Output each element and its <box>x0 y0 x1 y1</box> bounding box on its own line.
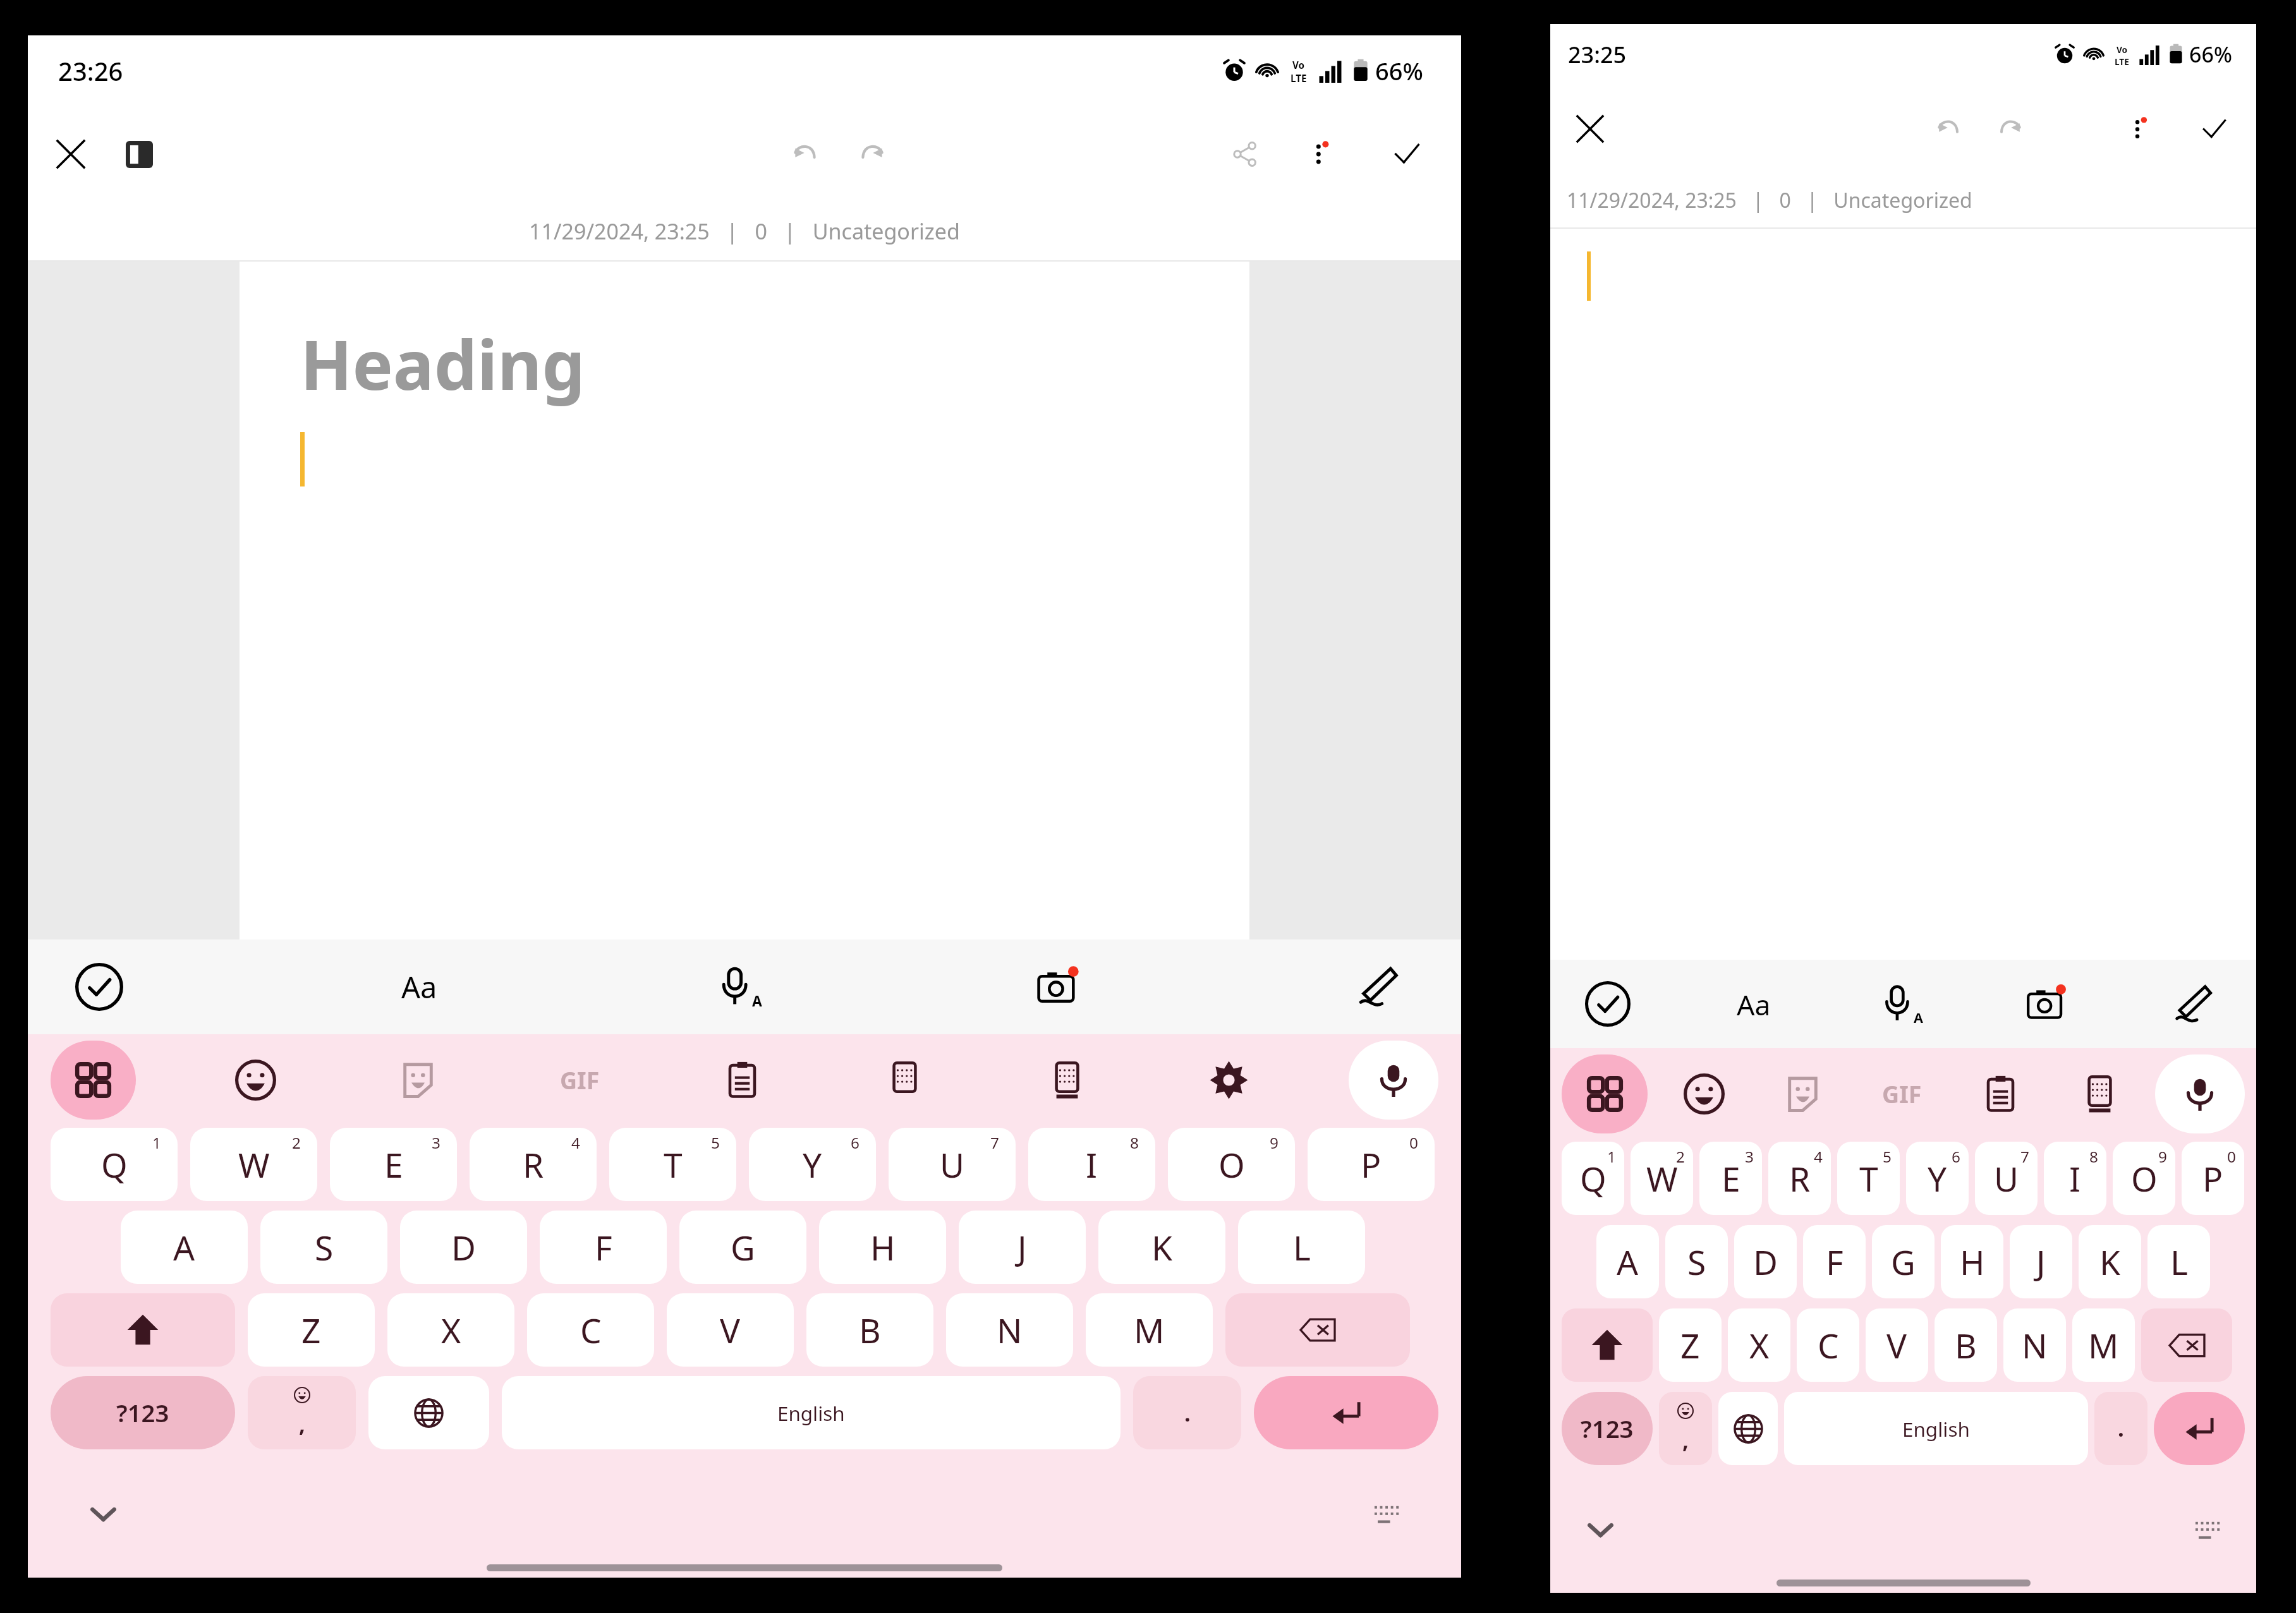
button[interactable]: Voice input <box>705 953 772 1020</box>
button[interactable]: T <box>609 1128 736 1201</box>
button[interactable]: Hide keyboard <box>79 1489 128 1538</box>
button[interactable]: Close <box>1563 102 1617 156</box>
button[interactable]: H <box>819 1211 946 1284</box>
button[interactable]: Voice input <box>1868 972 1933 1036</box>
button[interactable]: Emoji <box>213 1041 298 1120</box>
button[interactable]: Q <box>51 1128 178 1201</box>
button[interactable]: G <box>679 1211 806 1284</box>
button[interactable]: W <box>1631 1142 1693 1215</box>
button[interactable]: More options <box>1292 125 1350 183</box>
button[interactable]: Change language <box>1718 1392 1778 1465</box>
button[interactable]: Period <box>2094 1392 2147 1465</box>
button[interactable]: Z <box>248 1293 375 1367</box>
button[interactable]: Undo <box>1922 102 1977 156</box>
button[interactable]: Voice typing <box>2155 1054 2245 1133</box>
button[interactable]: Camera <box>1024 953 1091 1020</box>
button[interactable]: Clipboard <box>700 1041 785 1120</box>
button[interactable]: Stickers <box>375 1041 461 1120</box>
button[interactable]: Text format <box>386 953 453 1020</box>
button[interactable]: Z <box>1659 1308 1722 1382</box>
button[interactable]: A <box>1596 1225 1659 1298</box>
button[interactable]: D <box>400 1211 527 1284</box>
button[interactable]: Voice typing <box>1349 1041 1438 1120</box>
button[interactable]: Share <box>1216 125 1274 183</box>
button[interactable]: C <box>527 1293 654 1367</box>
button[interactable]: F <box>540 1211 667 1284</box>
button[interactable]: Y <box>749 1128 876 1201</box>
button[interactable]: H <box>1941 1225 2003 1298</box>
button[interactable]: Keyboard modes <box>51 1041 136 1120</box>
button[interactable]: T <box>1837 1142 1900 1215</box>
button[interactable]: V <box>1866 1308 1928 1382</box>
button[interactable]: Undo <box>777 125 835 183</box>
button[interactable]: Emoji and comma <box>1659 1392 1712 1465</box>
button[interactable]: One-handed <box>862 1041 947 1120</box>
button[interactable]: Keyboard layout <box>1024 1041 1110 1120</box>
button[interactable]: M <box>2072 1308 2135 1382</box>
button[interactable]: Redo <box>842 125 900 183</box>
button[interactable]: R <box>1768 1142 1831 1215</box>
button[interactable]: Symbols <box>51 1376 235 1449</box>
button[interactable]: P <box>2182 1142 2244 1215</box>
button[interactable]: Period <box>1133 1376 1241 1449</box>
button[interactable]: Redo <box>1982 102 2036 156</box>
button[interactable]: Shift <box>51 1293 235 1367</box>
button[interactable]: N <box>2003 1308 2066 1382</box>
button[interactable]: S <box>1665 1225 1728 1298</box>
button[interactable]: Shift <box>1562 1308 1653 1382</box>
button[interactable]: Hide keyboard <box>1576 1504 1625 1554</box>
button[interactable]: B <box>806 1293 933 1367</box>
button[interactable]: K <box>1098 1211 1225 1284</box>
button[interactable]: Change language <box>368 1376 489 1449</box>
button[interactable]: J <box>2010 1225 2072 1298</box>
button[interactable]: O <box>2113 1142 2175 1215</box>
button[interactable]: R <box>470 1128 597 1201</box>
button[interactable]: More options <box>2112 102 2166 156</box>
button[interactable]: Close <box>42 125 100 183</box>
button[interactable]: Keyboard modes <box>1562 1054 1648 1133</box>
button[interactable]: Resize keyboard <box>2182 1504 2231 1554</box>
button[interactable]: Resize keyboard <box>1361 1489 1410 1538</box>
button[interactable]: Backspace <box>2141 1308 2232 1382</box>
button[interactable]: Enter <box>2154 1392 2245 1465</box>
button[interactable]: D <box>1734 1225 1797 1298</box>
button[interactable]: S <box>260 1211 387 1284</box>
button[interactable]: Backspace <box>1225 1293 1410 1367</box>
button[interactable]: Draw <box>2160 972 2225 1036</box>
button[interactable]: V <box>667 1293 794 1367</box>
button[interactable]: E <box>330 1128 457 1201</box>
button[interactable]: Draw <box>1344 953 1411 1020</box>
button[interactable]: G <box>1872 1225 1935 1298</box>
button[interactable]: Done <box>2187 102 2241 156</box>
button[interactable]: X <box>387 1293 514 1367</box>
button[interactable]: A <box>121 1211 248 1284</box>
button[interactable]: Settings <box>1186 1041 1272 1120</box>
button[interactable]: N <box>946 1293 1073 1367</box>
button[interactable]: I <box>1028 1128 1155 1201</box>
button[interactable]: L <box>2147 1225 2210 1298</box>
button[interactable]: Checklist <box>66 953 133 1020</box>
button[interactable]: F <box>1803 1225 1866 1298</box>
button[interactable]: English <box>1784 1392 2088 1465</box>
button[interactable]: Emoji <box>1661 1054 1747 1133</box>
button[interactable]: J <box>959 1211 1086 1284</box>
button[interactable]: U <box>889 1128 1016 1201</box>
button[interactable]: Enter <box>1254 1376 1438 1449</box>
button[interactable]: Q <box>1562 1142 1624 1215</box>
button[interactable]: Checklist <box>1576 972 1640 1036</box>
button[interactable]: W <box>190 1128 317 1201</box>
button[interactable]: GIF <box>1859 1054 1945 1133</box>
button[interactable]: GIF <box>537 1041 623 1120</box>
button[interactable]: B <box>1935 1308 1997 1382</box>
button[interactable]: I <box>2044 1142 2106 1215</box>
button[interactable]: Clipboard <box>1957 1054 2043 1133</box>
button[interactable]: L <box>1238 1211 1365 1284</box>
button[interactable]: X <box>1728 1308 1790 1382</box>
button[interactable]: Camera <box>2014 972 2079 1036</box>
button[interactable]: O <box>1168 1128 1295 1201</box>
button[interactable]: C <box>1797 1308 1859 1382</box>
button[interactable]: English <box>502 1376 1121 1449</box>
button[interactable]: Emoji and comma <box>248 1376 356 1449</box>
button[interactable]: K <box>2079 1225 2141 1298</box>
button[interactable]: Stickers <box>1759 1054 1845 1133</box>
